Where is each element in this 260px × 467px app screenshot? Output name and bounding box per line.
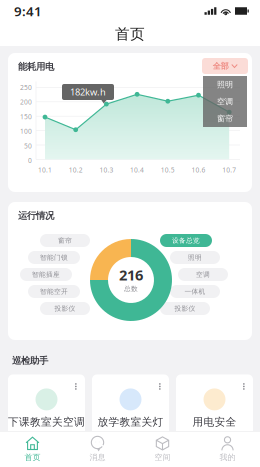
button[interactable]: 投影仪	[40, 302, 90, 315]
staticText: 空调	[196, 270, 210, 279]
button[interactable]: 消息	[65, 431, 130, 467]
button[interactable]: 智能空开	[28, 285, 80, 298]
staticText: 10.1	[38, 165, 52, 174]
staticText: 9:41	[14, 2, 42, 20]
staticText: 100	[20, 127, 32, 136]
button[interactable]: 窗帘	[203, 110, 247, 127]
staticText: 巡检助手	[12, 355, 48, 366]
button[interactable]: 智能门锁	[28, 251, 80, 264]
staticText: 照明	[217, 80, 233, 89]
staticText: 智能空开	[40, 287, 68, 296]
staticText: 投影仪	[174, 304, 195, 313]
button[interactable]: 照明	[170, 251, 220, 264]
staticText: 照明	[188, 253, 202, 262]
button[interactable]: 空间	[130, 431, 195, 467]
button[interactable]: 用电安全	[176, 374, 253, 436]
staticText: 10.6	[191, 165, 205, 174]
button[interactable]: 首页	[0, 431, 65, 467]
button[interactable]: 下课教室关空调	[8, 374, 85, 436]
button[interactable]: 照明	[203, 76, 247, 93]
button[interactable]: 放学教室关灯	[92, 374, 169, 436]
button[interactable]: 我的	[195, 431, 260, 467]
staticText: 250	[20, 83, 32, 92]
staticText: 投影仪	[54, 304, 75, 313]
staticText: 10.5	[161, 165, 175, 174]
staticText: 总数	[124, 285, 138, 293]
button[interactable]: 全部	[202, 58, 248, 74]
staticText: 用电安全	[192, 415, 236, 428]
staticText: 10.2	[69, 165, 83, 174]
staticText: 10.7	[222, 165, 236, 174]
staticText: 首页	[115, 25, 145, 43]
staticText: 能耗用电	[18, 61, 54, 72]
staticText: 放学教室关灯	[97, 415, 163, 428]
button[interactable]: 空调	[203, 93, 247, 110]
staticText: 窗帘	[58, 236, 72, 245]
button[interactable]: 投影仪	[160, 302, 210, 315]
staticText: 我的	[219, 452, 235, 462]
button[interactable]: 空调	[178, 268, 228, 281]
staticText: 150	[20, 112, 32, 121]
button[interactable]: 智能插座	[20, 268, 72, 281]
staticText: 216	[119, 265, 143, 285]
staticText: 200	[20, 98, 32, 106]
staticText: 设备总览	[172, 236, 200, 245]
button[interactable]: 一体机	[170, 285, 220, 298]
staticText: 空调	[217, 97, 233, 106]
staticText: 0	[28, 156, 32, 165]
staticText: 182kw.h	[70, 86, 106, 98]
staticText: 首页	[24, 452, 40, 462]
staticText: 50	[24, 141, 32, 150]
staticText: 智能门锁	[40, 253, 68, 262]
staticText: 下课教室关空调	[8, 415, 85, 428]
staticText: 窗帘	[217, 114, 233, 123]
staticText: 消息	[89, 452, 105, 462]
staticText: 一体机	[184, 287, 205, 296]
staticText: 运行情况	[18, 210, 54, 221]
staticText: 全部	[213, 61, 229, 71]
staticText: 10.3	[99, 165, 113, 174]
staticText: 空间	[154, 452, 170, 462]
button[interactable]: 设备总览	[160, 234, 212, 247]
staticText: 智能插座	[32, 270, 60, 279]
staticText: 10.4	[130, 165, 144, 174]
button[interactable]: 窗帘	[40, 234, 90, 247]
